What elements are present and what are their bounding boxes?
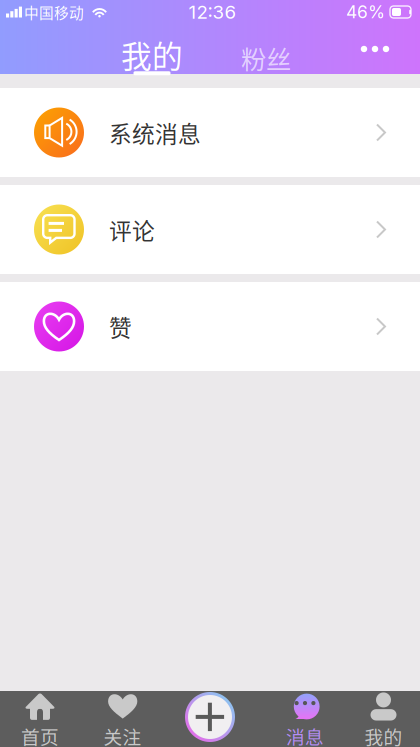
staticText: 首页 — [21, 722, 59, 747]
button[interactable]: 粉丝 — [218, 24, 314, 74]
button[interactable]: More options — [347, 24, 403, 74]
staticText: 46% — [346, 1, 385, 22]
button[interactable]: Create — [185, 692, 235, 742]
staticText: 系统消息 — [109, 116, 201, 149]
button[interactable]: 我的 — [104, 24, 200, 74]
staticText: 评论 — [109, 213, 155, 246]
button[interactable]: 系统消息 — [0, 88, 420, 177]
button[interactable]: 评论 — [0, 185, 420, 274]
staticText: 中国移动 — [24, 1, 84, 23]
staticText: 关注 — [103, 722, 141, 747]
staticText: 我的 — [364, 722, 402, 747]
staticText: 消息 — [286, 722, 324, 747]
staticText: 我的 — [121, 32, 183, 77]
button[interactable]: 关注 — [80, 691, 165, 747]
button[interactable]: 赞 — [0, 282, 420, 371]
staticText: 粉丝 — [241, 40, 291, 76]
button[interactable]: 消息 — [263, 691, 347, 747]
staticText: 赞 — [109, 310, 132, 343]
staticText: 12:36 — [188, 1, 236, 23]
button[interactable]: 我的 — [347, 691, 420, 747]
button[interactable]: 首页 — [0, 691, 80, 747]
